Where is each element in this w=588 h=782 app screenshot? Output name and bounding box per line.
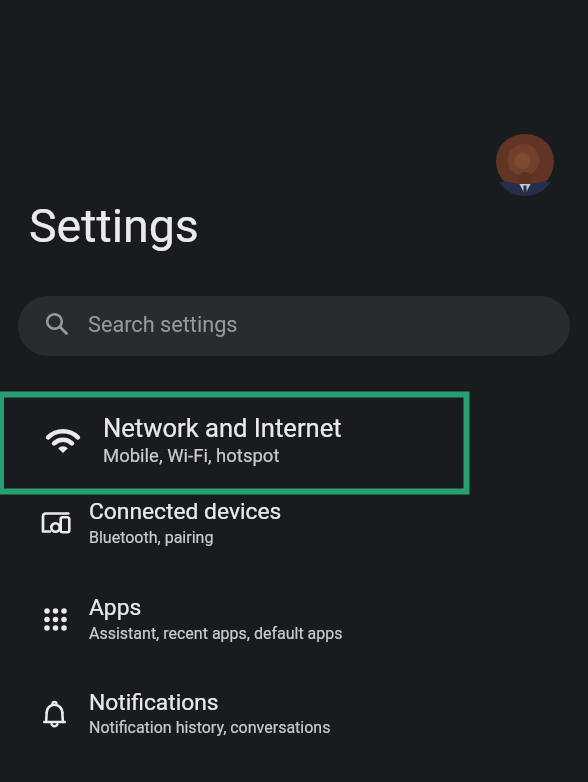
staticText: Notifications [89, 689, 219, 716]
button[interactable]: Network and Internet [4, 398, 466, 491]
button[interactable] [494, 134, 556, 196]
staticText: Apps [89, 594, 142, 621]
button[interactable]: Connected devices [0, 486, 588, 570]
button[interactable]: Notifications [0, 678, 588, 774]
button[interactable]: Search settings [18, 296, 570, 356]
staticText: Bluetooth, pairing [89, 528, 214, 547]
staticText: Connected devices [89, 498, 282, 525]
staticText: Mobile, Wi-Fi, hotspot [103, 445, 280, 467]
button[interactable]: Apps [0, 582, 588, 678]
staticText: Network and Internet [103, 413, 342, 443]
staticText: Assistant, recent apps, default apps [89, 624, 343, 643]
staticText: Settings [29, 199, 199, 253]
staticText: Notification history, conversations [89, 718, 331, 737]
staticText: Search settings [88, 312, 238, 337]
